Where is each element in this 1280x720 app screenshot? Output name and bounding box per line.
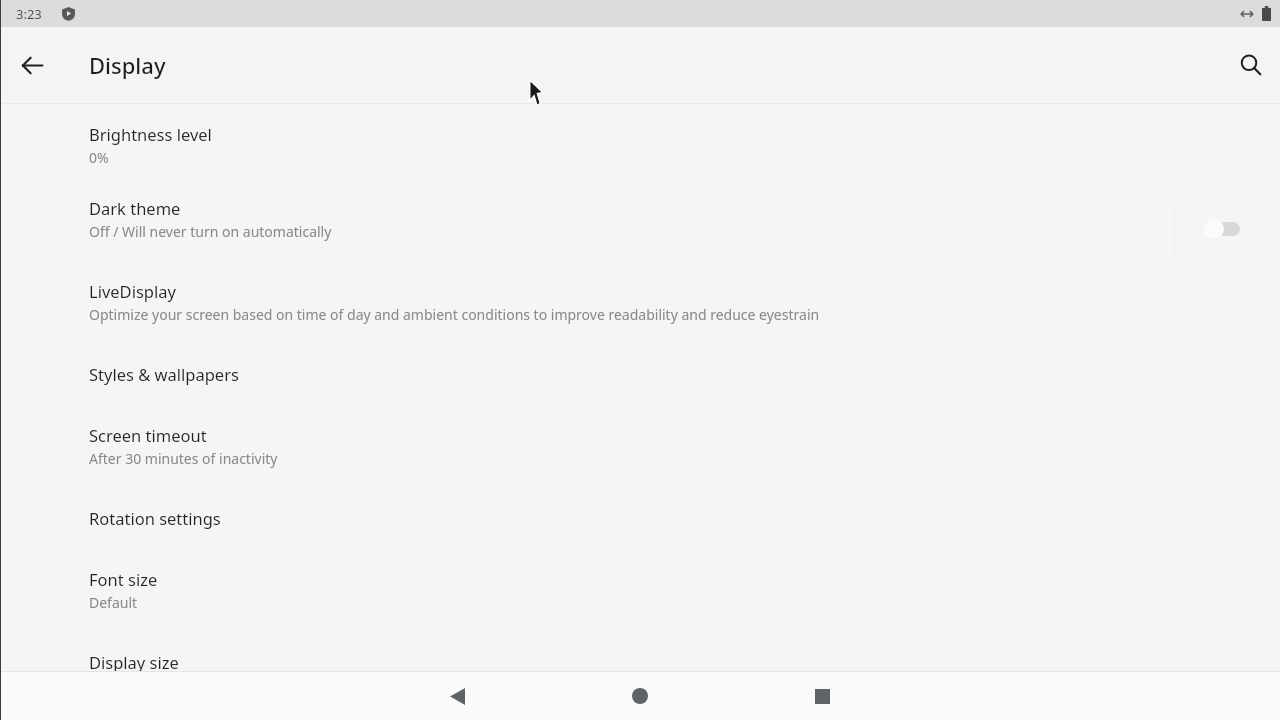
staticText: Brightness level: [89, 123, 212, 145]
button[interactable]: LiveDisplay: [0, 270, 1280, 353]
staticText: Optimize your screen based on time of da…: [89, 305, 820, 324]
button[interactable]: Recent apps: [798, 672, 846, 720]
staticText: Off / Will never turn on automatically: [89, 222, 332, 241]
staticText: Screen timeout: [89, 424, 207, 446]
staticText: 3:23: [16, 5, 42, 23]
button[interactable]: Brightness level: [0, 113, 1280, 187]
button[interactable]: Dark theme: [0, 187, 1280, 270]
button[interactable]: Dark theme toggle: [1198, 212, 1250, 246]
button[interactable]: Rotation settings: [0, 497, 1280, 558]
staticText: Rotation settings: [89, 507, 221, 529]
staticText: Default: [89, 593, 138, 612]
staticText: 0%: [89, 148, 109, 167]
staticText: LiveDisplay: [89, 280, 176, 302]
button[interactable]: Styles & wallpapers: [0, 353, 1280, 414]
button[interactable]: Home: [616, 672, 664, 720]
staticText: Dark theme: [89, 197, 181, 219]
staticText: Styles & wallpapers: [89, 363, 239, 385]
staticText: Display: [89, 50, 166, 80]
button[interactable]: Font size: [0, 558, 1280, 641]
staticText: Display size: [89, 651, 179, 673]
button[interactable]: Screen timeout: [0, 414, 1280, 497]
staticText: Font size: [89, 568, 158, 590]
button[interactable]: Search: [1227, 41, 1275, 89]
button[interactable]: Back: [8, 41, 56, 89]
button[interactable]: Display size: [0, 641, 1280, 672]
button[interactable]: Back: [433, 672, 481, 720]
staticText: After 30 minutes of inactivity: [89, 449, 278, 468]
